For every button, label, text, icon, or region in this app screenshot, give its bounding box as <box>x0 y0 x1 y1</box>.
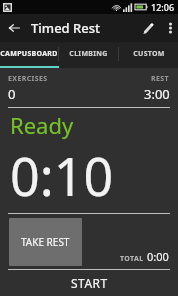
staticText: EXERCISES <box>8 74 48 84</box>
staticText: Timed Rest <box>31 19 101 37</box>
button[interactable]: Edit <box>134 14 162 42</box>
staticText: TAKE REST <box>21 235 70 249</box>
button[interactable]: CLIMBING <box>59 42 118 66</box>
button[interactable]: Back <box>0 14 28 42</box>
staticText: 0 <box>8 85 16 103</box>
button[interactable]: TAKE REST <box>9 218 82 266</box>
staticText: CLIMBING <box>69 49 108 59</box>
button[interactable]: START <box>0 270 178 296</box>
staticText: 0:00 <box>147 249 169 264</box>
staticText: CAMPUSBOARD <box>0 49 58 59</box>
button[interactable]: CUSTOM <box>119 42 178 66</box>
staticText: Ready <box>10 110 74 140</box>
button[interactable]: More options <box>162 14 178 42</box>
staticText: CUSTOM <box>133 49 165 59</box>
staticText: 3:00 <box>144 85 170 103</box>
staticText: 12:06 <box>151 1 175 13</box>
staticText: 0:10 <box>10 140 114 211</box>
staticText: TOTAL <box>120 254 144 264</box>
staticText: START <box>71 275 108 291</box>
button[interactable]: CAMPUSBOARD <box>0 42 58 66</box>
staticText: REST <box>151 74 170 84</box>
